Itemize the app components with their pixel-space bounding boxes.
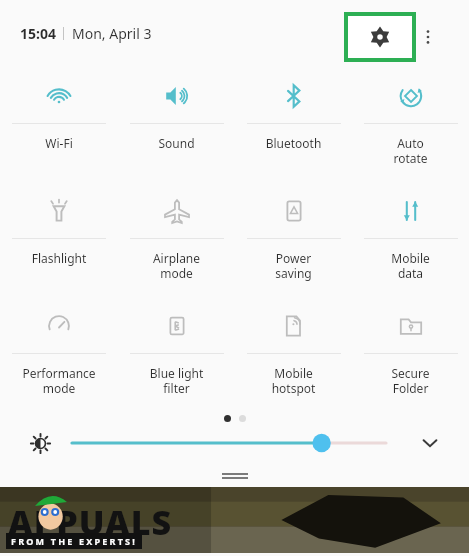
button[interactable]: Brightness slider bbox=[62, 430, 396, 456]
staticText: Wi-Fi bbox=[2, 135, 116, 151]
button[interactable]: Mobile hotspot bbox=[235, 296, 352, 411]
button[interactable]: Brightness bbox=[28, 431, 52, 455]
staticText: Mon, April 3 bbox=[72, 24, 152, 43]
staticText: Power saving bbox=[237, 250, 350, 281]
staticText: Mobile hotspot bbox=[237, 365, 350, 396]
staticText: Secure Folder bbox=[354, 365, 467, 396]
button[interactable]: Secure Folder bbox=[352, 296, 469, 411]
staticText: Performance mode bbox=[2, 365, 116, 396]
button[interactable]: Airplane mode bbox=[118, 181, 235, 296]
staticText: APPUALS bbox=[8, 499, 173, 545]
staticText: Auto rotate bbox=[354, 135, 467, 166]
staticText: Mobile data bbox=[354, 250, 467, 281]
staticText: Bluetooth bbox=[237, 135, 350, 151]
button[interactable]: Power saving bbox=[235, 181, 352, 296]
staticText: Sound bbox=[120, 135, 233, 151]
staticText: 15:04 bbox=[20, 24, 56, 43]
button[interactable]: More options bbox=[416, 20, 440, 54]
button[interactable]: Performance mode bbox=[0, 296, 118, 411]
button[interactable]: Bluetooth bbox=[235, 66, 352, 181]
staticText: Blue light filter bbox=[120, 365, 233, 396]
staticText: Flashlight bbox=[2, 250, 116, 266]
button[interactable]: Flashlight bbox=[0, 181, 118, 296]
staticText: Airplane mode bbox=[120, 250, 233, 281]
button[interactable]: Sound bbox=[118, 66, 235, 181]
button[interactable]: Mobile data bbox=[352, 181, 469, 296]
button[interactable]: Auto rotate bbox=[352, 66, 469, 181]
button[interactable]: Expand bbox=[417, 430, 443, 456]
button[interactable]: Blue light filter bbox=[118, 296, 235, 411]
staticText: FROM THE EXPERTS! bbox=[11, 535, 137, 547]
button[interactable]: Settings bbox=[348, 16, 412, 58]
button[interactable]: Wi-Fi bbox=[0, 66, 118, 181]
